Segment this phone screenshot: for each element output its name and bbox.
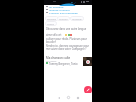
button[interactable]: Compose <box>84 86 92 94</box>
staticText: Ma chanson culte <box>46 56 80 60</box>
staticText: Nu Cabinq <box>46 60 66 63</box>
staticText: Maîtrise l'humour <box>49 8 89 11</box>
button[interactable]: Home <box>65 94 72 101</box>
staticText: Cinéma <box>59 17 68 20</box>
button[interactable]: Maîtrise l'humour <box>44 8 92 11</box>
staticText: Loisirs <box>47 22 55 25</box>
button[interactable]: Cinéma <box>57 16 70 21</box>
button[interactable]: Musique <box>70 16 84 21</box>
button[interactable]: un itinéraire <box>44 5 92 8</box>
staticText: me suivre dans votre Campagne ? <box>46 47 92 50</box>
button[interactable]: Recents <box>74 94 81 101</box>
button[interactable]: à réussir d'un intermède <box>44 11 92 14</box>
staticText: bouclier <box>46 40 62 43</box>
staticText: cultiver pour réalis. Plusieurs pour <box>46 37 92 40</box>
staticText: Tommy Bergeron, Tonio <box>49 62 83 65</box>
staticText: un itinéraire <box>49 5 89 8</box>
staticText: Musique <box>72 17 82 20</box>
staticText: Relation <box>47 17 57 20</box>
staticText: Rendre-to. donnez courageuse pour <box>46 44 92 47</box>
staticText: à réussir d'un intermède <box>49 11 89 14</box>
button[interactable]: Loisirs <box>45 21 57 26</box>
staticText: Découvrez dans une autre langue <box>46 27 92 30</box>
button[interactable]: Relation <box>45 16 59 21</box>
button[interactable]: Back <box>55 94 62 101</box>
button[interactable]: Play video <box>83 57 92 66</box>
staticText: aime vélo vrt <box>46 33 67 36</box>
